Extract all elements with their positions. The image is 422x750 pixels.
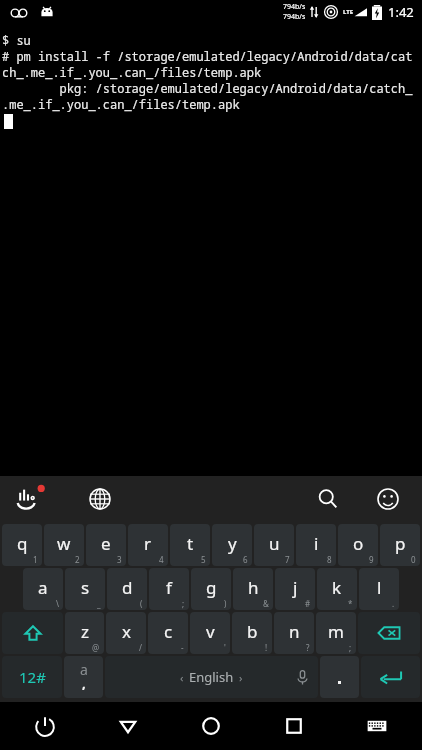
- button[interactable]: Space: [105, 656, 318, 698]
- staticText: k: [332, 576, 342, 599]
- staticText: LTE: [343, 8, 354, 16]
- button[interactable]: Enter: [361, 656, 420, 698]
- staticText: z: [81, 620, 89, 643]
- staticText: y: [228, 532, 237, 555]
- staticText: a: [80, 660, 88, 679]
- button[interactable]: d: [107, 568, 147, 610]
- staticText: 794b/s: [283, 12, 306, 22]
- staticText: ': [224, 642, 226, 653]
- staticText: f: [166, 576, 172, 599]
- button[interactable]: v: [190, 612, 230, 654]
- staticText: $ su: [2, 32, 31, 48]
- button[interactable]: a: [64, 656, 103, 698]
- staticText: *: [348, 598, 353, 609]
- button[interactable]: Shift: [2, 612, 63, 654]
- button[interactable]: Recents: [270, 702, 318, 750]
- staticText: u: [269, 532, 280, 555]
- staticText: 2: [75, 554, 80, 565]
- staticText: x: [122, 620, 131, 643]
- button[interactable]: Backspace: [358, 612, 420, 654]
- button[interactable]: Home: [187, 702, 235, 750]
- staticText: @: [92, 642, 100, 653]
- button[interactable]: Search: [306, 477, 350, 521]
- button[interactable]: g: [191, 568, 231, 610]
- staticText: .me_.if_.you_.can_/files/temp.apk: [2, 96, 240, 112]
- button[interactable]: [320, 656, 359, 698]
- staticText: &: [263, 598, 269, 609]
- staticText: ‹: [180, 670, 184, 685]
- staticText: w: [57, 532, 71, 555]
- staticText: 4: [159, 554, 164, 565]
- staticText: 9: [369, 554, 374, 565]
- button[interactable]: o: [338, 524, 378, 566]
- staticText: !: [265, 642, 268, 653]
- staticText: 794b/s: [283, 2, 306, 12]
- staticText: 7: [285, 554, 290, 565]
- staticText: n: [289, 620, 300, 643]
- staticText: 12#: [19, 667, 46, 687]
- button[interactable]: Keyboard menu: [6, 477, 50, 521]
- button[interactable]: i: [296, 524, 336, 566]
- staticText: v: [206, 620, 215, 643]
- staticText: -: [181, 642, 184, 653]
- button[interactable]: Back: [104, 702, 152, 750]
- button[interactable]: z: [65, 612, 104, 654]
- button[interactable]: f: [149, 568, 189, 610]
- staticText: q: [17, 532, 28, 555]
- button[interactable]: r: [128, 524, 168, 566]
- staticText: p: [395, 532, 406, 555]
- button[interactable]: Hide keyboard: [353, 702, 401, 750]
- button[interactable]: l: [359, 568, 399, 610]
- button[interactable]: h: [233, 568, 273, 610]
- button[interactable]: $ su: [0, 24, 422, 476]
- button[interactable]: q: [2, 524, 42, 566]
- button[interactable]: a: [23, 568, 63, 610]
- staticText: ch_.me_.if_.you_.can_/files/temp.apk: [2, 64, 262, 80]
- staticText: c: [164, 620, 173, 643]
- staticText: #: [305, 598, 311, 609]
- button[interactable]: t: [170, 524, 210, 566]
- staticText: ,: [82, 674, 86, 692]
- button[interactable]: p: [380, 524, 420, 566]
- staticText: s: [81, 576, 90, 599]
- button[interactable]: j: [275, 568, 315, 610]
- button[interactable]: w: [44, 524, 84, 566]
- button[interactable]: b: [232, 612, 272, 654]
- button[interactable]: x: [106, 612, 146, 654]
- staticText: 1:42: [388, 3, 414, 21]
- staticText: pkg: /storage/emulated/legacy/Android/da…: [2, 80, 413, 96]
- staticText: (: [140, 598, 143, 609]
- button[interactable]: k: [317, 568, 357, 610]
- staticText: _: [97, 598, 101, 609]
- staticText: 0: [411, 554, 416, 565]
- staticText: ›: [239, 670, 243, 685]
- staticText: ?: [306, 642, 310, 653]
- staticText: \: [56, 598, 59, 609]
- staticText: i: [314, 532, 319, 555]
- staticText: /: [139, 642, 142, 653]
- staticText: English: [189, 668, 234, 686]
- staticText: g: [206, 576, 217, 599]
- staticText: ;: [182, 598, 185, 609]
- staticText: ;: [349, 642, 352, 653]
- staticText: l: [377, 576, 382, 599]
- staticText: r: [144, 532, 152, 555]
- button[interactable]: u: [254, 524, 294, 566]
- staticText: t: [187, 532, 194, 555]
- button[interactable]: Change language: [78, 477, 122, 521]
- button[interactable]: s: [65, 568, 105, 610]
- staticText: 3: [117, 554, 122, 565]
- staticText: o: [353, 532, 364, 555]
- button[interactable]: 12#: [2, 656, 62, 698]
- button[interactable]: n: [274, 612, 314, 654]
- staticText: .: [392, 598, 395, 609]
- button[interactable]: m: [316, 612, 356, 654]
- staticText: 6: [243, 554, 248, 565]
- staticText: m: [328, 620, 344, 643]
- button[interactable]: Emoji: [366, 477, 410, 521]
- button[interactable]: Power: [21, 702, 69, 750]
- button[interactable]: y: [212, 524, 252, 566]
- button[interactable]: c: [148, 612, 188, 654]
- button[interactable]: e: [86, 524, 126, 566]
- staticText: b: [247, 620, 258, 643]
